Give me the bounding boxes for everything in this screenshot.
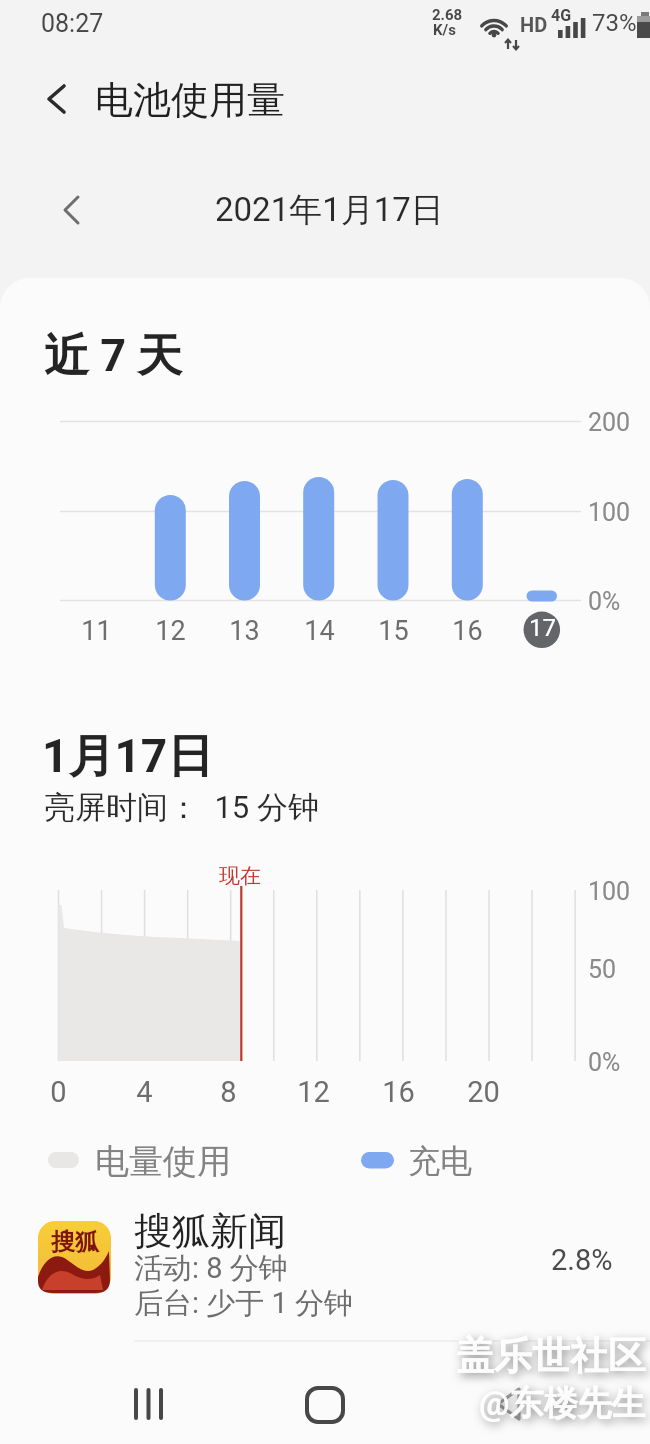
staticText: 0%	[588, 1048, 621, 1077]
staticText: 50	[588, 955, 617, 984]
button[interactable]	[105, 1375, 195, 1435]
staticText: 电池使用量	[95, 76, 285, 124]
staticText: 16	[382, 1075, 415, 1109]
staticText: 盖乐世社区	[456, 1332, 646, 1380]
staticText: 17	[529, 614, 556, 642]
staticText: 20	[467, 1075, 500, 1109]
staticText: HD	[520, 13, 548, 36]
staticText: 电量使用	[95, 1140, 231, 1183]
staticText: 2.68	[432, 6, 463, 24]
staticText: 2.8%	[551, 1243, 613, 1277]
staticText: 12	[155, 615, 186, 647]
button[interactable]	[40, 180, 105, 240]
button[interactable]	[518, 606, 566, 654]
staticText: 16	[452, 615, 483, 647]
staticText: 12	[297, 1075, 330, 1109]
staticText: 后台: 少于 1 分钟	[134, 1285, 353, 1322]
button[interactable]	[0, 1200, 650, 1337]
staticText: 现在	[219, 863, 261, 889]
staticText: 11	[81, 615, 112, 647]
staticText: 搜狐新闻	[134, 1207, 286, 1255]
staticText: 活动: 8 分钟	[134, 1250, 288, 1287]
staticText: 13	[229, 615, 260, 647]
staticText: 100	[588, 877, 631, 906]
staticText: 73%	[592, 9, 637, 37]
staticText: 近 7 天	[44, 328, 183, 385]
button[interactable]	[280, 1375, 370, 1435]
staticText: 1月17日	[42, 728, 214, 786]
staticText: 4G	[551, 6, 572, 25]
staticText: @东楼先生	[479, 1382, 646, 1425]
staticText: 4	[136, 1075, 153, 1109]
staticText: K/s	[433, 21, 456, 39]
staticText: 充电	[408, 1141, 472, 1181]
staticText: 100	[588, 498, 631, 527]
staticText: 亮屏时间： 15 分钟	[44, 788, 319, 827]
staticText: 2021年1月17日	[215, 189, 444, 231]
staticText: 200	[588, 408, 631, 437]
staticText: 0%	[588, 587, 621, 616]
staticText: 14	[304, 615, 335, 647]
button[interactable]	[20, 60, 95, 130]
staticText: 0	[50, 1075, 67, 1109]
staticText: 08:27	[41, 9, 104, 38]
staticText: 15	[378, 615, 409, 647]
staticText: 搜狐	[51, 1227, 99, 1257]
staticText: 8	[220, 1075, 237, 1109]
button[interactable]	[463, 1375, 553, 1435]
